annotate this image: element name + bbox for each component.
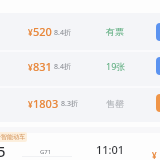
staticText: 8.4折 [54, 62, 71, 72]
button[interactable]: Book ticket [156, 94, 160, 112]
staticText: ¥ [28, 27, 33, 38]
staticText: 1803 [33, 96, 59, 111]
staticText: 8.4折 [54, 28, 71, 38]
staticText: 520 [33, 24, 52, 39]
button[interactable]: Book ticket [156, 57, 160, 75]
staticText: 11:01 [96, 142, 125, 157]
staticText: 号智能动车 [0, 133, 25, 141]
button[interactable]: 号智能动车 [0, 133, 25, 141]
staticText: ¥ [152, 150, 157, 160]
staticText: ¥ [28, 99, 33, 110]
button[interactable]: ¥ [0, 49, 160, 83]
staticText: ¥ [28, 62, 33, 73]
staticText: 8.3折 [61, 99, 78, 109]
staticText: 831 [33, 59, 52, 74]
staticText: 19张 [106, 60, 126, 72]
button[interactable]: Book ticket [156, 23, 160, 41]
button[interactable]: ¥ [0, 13, 160, 50]
staticText: 5 [0, 141, 6, 160]
button[interactable]: ¥ [0, 86, 160, 120]
staticText: 售罄 [106, 98, 124, 109]
staticText: 有票 [106, 26, 124, 37]
staticText: G71 [40, 148, 52, 156]
